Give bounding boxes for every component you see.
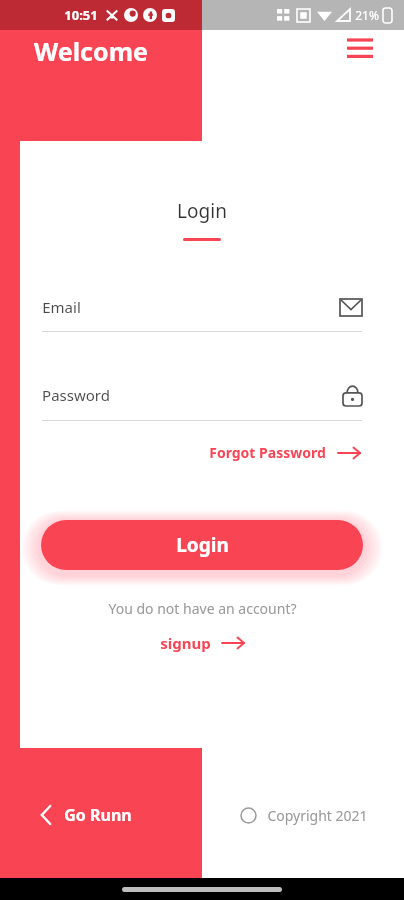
staticText: Password [42,385,110,405]
button[interactable]: Password [42,384,362,421]
button[interactable]: Login [41,520,363,570]
button[interactable]: Email [42,297,362,332]
staticText: Go Runn [64,804,132,826]
staticText: Copyright 2021 [267,806,368,825]
staticText: Login [177,198,227,224]
staticText: signup [160,633,211,653]
button[interactable]: Go Runn [0,752,202,878]
button[interactable]: signup [156,630,248,656]
staticText: Welcome [34,34,148,68]
staticText: Login [176,532,229,558]
staticText: 21% [355,7,379,23]
staticText: 10:51 [64,6,98,24]
staticText: Forgot Password [209,443,326,462]
button[interactable]: Forgot Password [207,439,362,466]
button[interactable]: Menu [342,30,378,66]
staticText: Email [42,297,81,317]
staticText: You do not have an account? [108,599,297,618]
